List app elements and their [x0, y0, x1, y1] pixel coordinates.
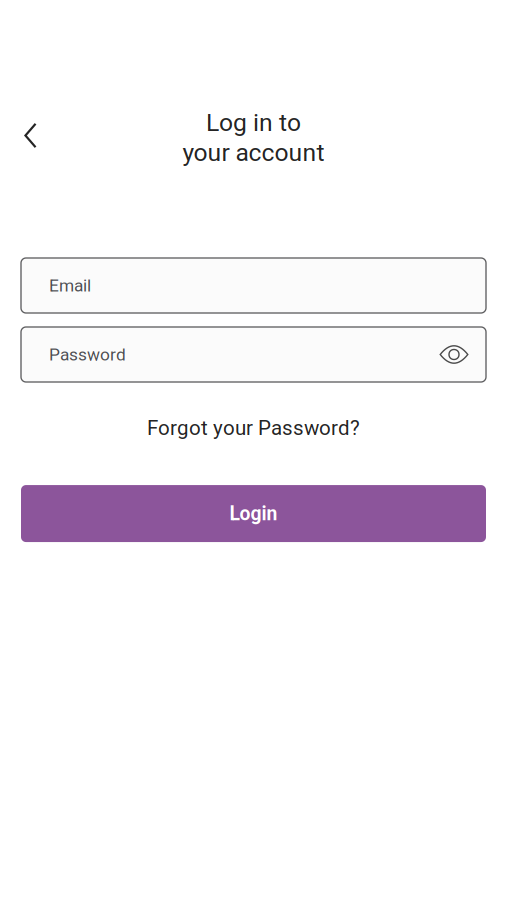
staticText: your account: [182, 138, 324, 167]
staticText: Forgot your Password?: [147, 416, 360, 440]
button[interactable]: Email: [21, 258, 486, 313]
staticText: Login: [229, 502, 277, 525]
button[interactable]: Password: [21, 327, 486, 382]
staticText: Log in to: [206, 108, 301, 137]
button[interactable]: Forgot your Password?: [133, 406, 374, 450]
staticText: Email: [49, 275, 91, 296]
staticText: Password: [49, 344, 126, 365]
button[interactable]: Login: [21, 485, 486, 542]
button[interactable]: Show password: [439, 345, 468, 364]
button[interactable]: Back: [8, 113, 52, 157]
